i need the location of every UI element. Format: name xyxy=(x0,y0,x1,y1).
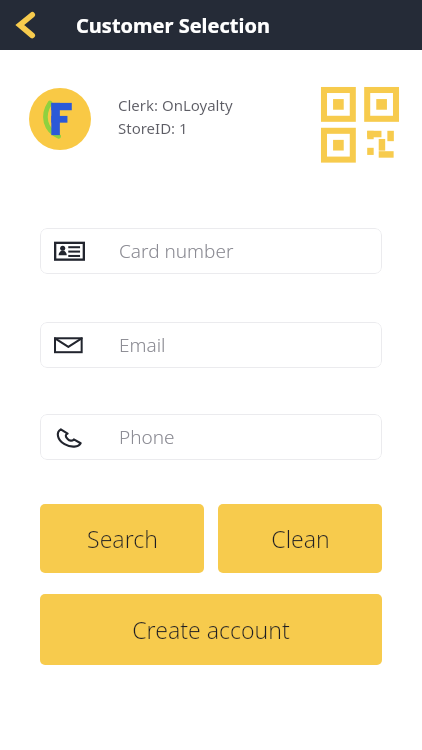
staticText: Create account xyxy=(132,614,290,645)
staticText: Card number xyxy=(119,238,234,264)
button[interactable]: Scan QR code xyxy=(324,90,396,158)
staticText: Clean xyxy=(271,523,330,554)
button[interactable]: Phone xyxy=(40,414,382,460)
button[interactable]: Email xyxy=(40,322,382,368)
staticText: StoreID: 1 xyxy=(118,118,188,138)
staticText: Customer Selection xyxy=(76,12,270,39)
staticText: Search xyxy=(87,523,158,554)
button[interactable]: Card number xyxy=(40,228,382,274)
button[interactable]: Create account xyxy=(40,594,382,665)
staticText: Clerk: OnLoyalty xyxy=(118,95,233,115)
button[interactable]: Back xyxy=(0,0,52,50)
staticText: Email xyxy=(119,332,166,358)
staticText: Phone xyxy=(119,424,175,450)
button[interactable]: App logo xyxy=(29,88,91,150)
button[interactable]: Clean xyxy=(218,504,382,573)
button[interactable]: Search xyxy=(40,504,204,573)
